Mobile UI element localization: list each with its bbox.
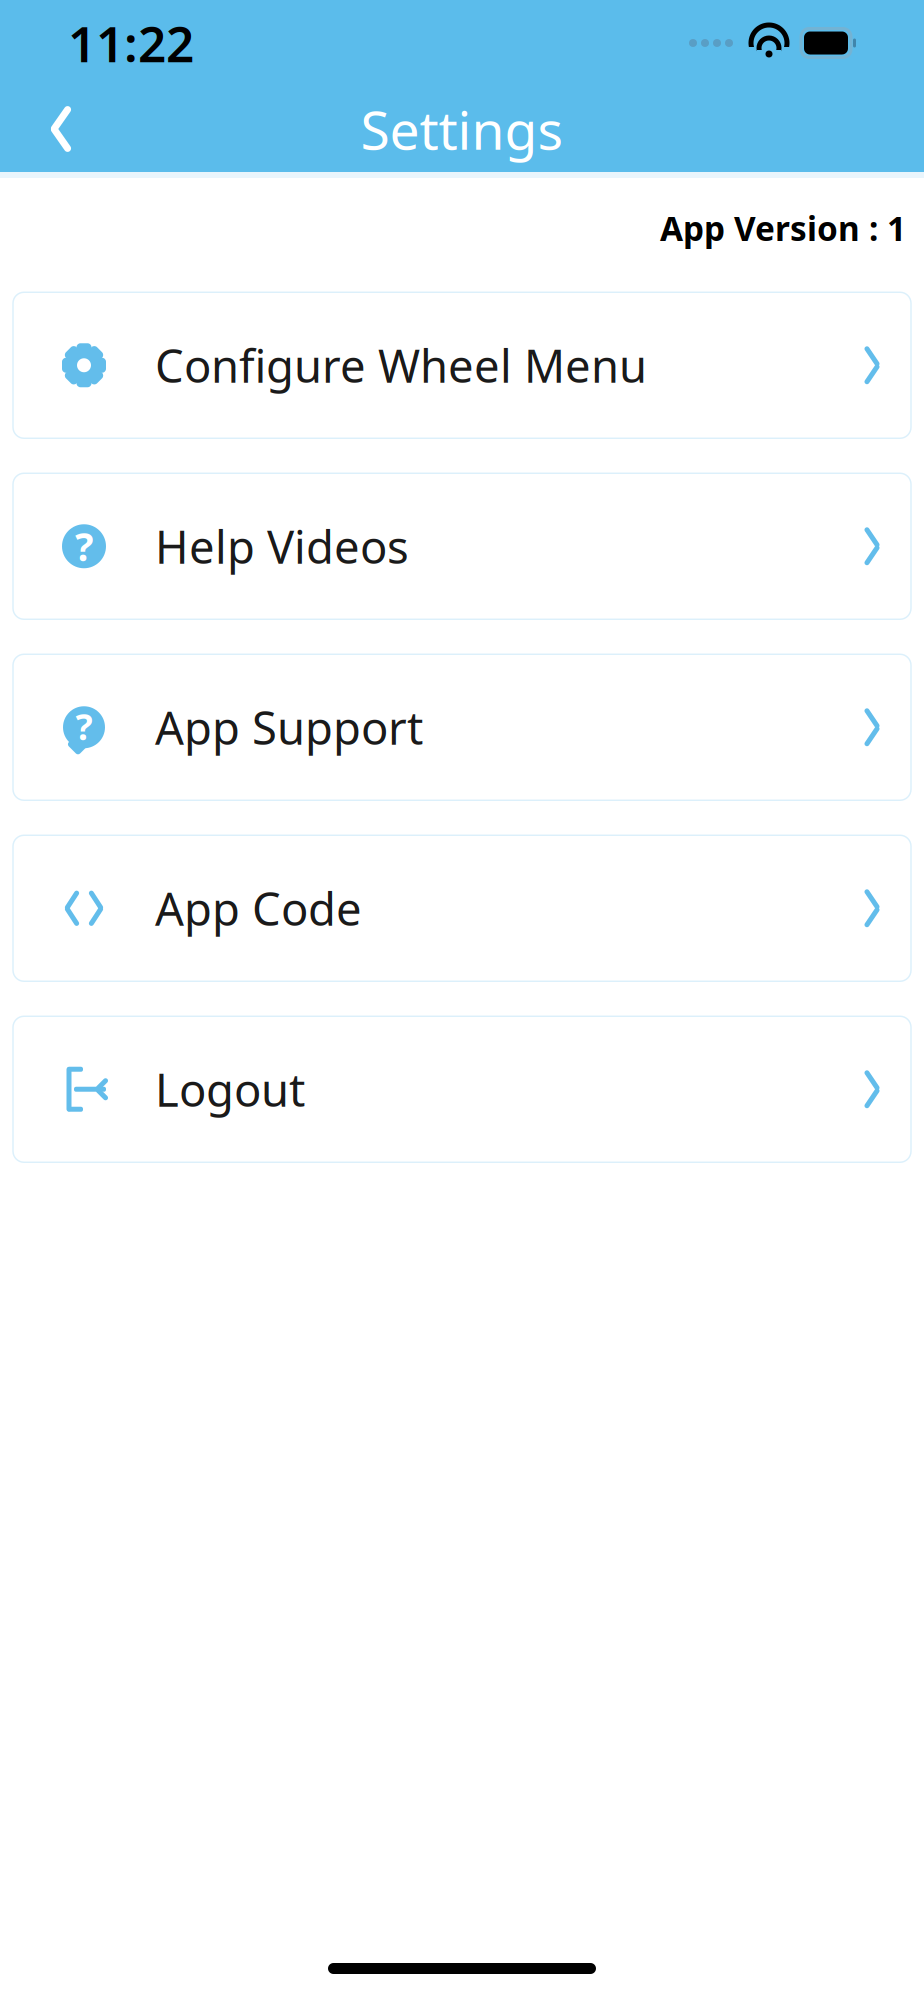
staticText: Configure Wheel Menu bbox=[155, 335, 647, 395]
staticText: App Support bbox=[155, 697, 423, 757]
staticText: ? bbox=[75, 521, 93, 572]
button[interactable]: Configure Wheel Menu bbox=[13, 292, 911, 438]
button[interactable]: Logout bbox=[13, 1016, 911, 1162]
staticText: App Code bbox=[155, 878, 362, 938]
button[interactable]: ? bbox=[13, 473, 911, 619]
button[interactable]: Back bbox=[20, 84, 102, 174]
staticText: ? bbox=[75, 702, 92, 750]
staticText: App Version : 1 bbox=[660, 206, 906, 250]
staticText: Logout bbox=[155, 1059, 305, 1119]
staticText: Help Videos bbox=[155, 516, 409, 576]
button[interactable]: App Code bbox=[13, 835, 911, 981]
button[interactable]: ? bbox=[13, 654, 911, 800]
staticText: Settings bbox=[360, 94, 563, 164]
staticText: 11:22 bbox=[68, 10, 194, 76]
